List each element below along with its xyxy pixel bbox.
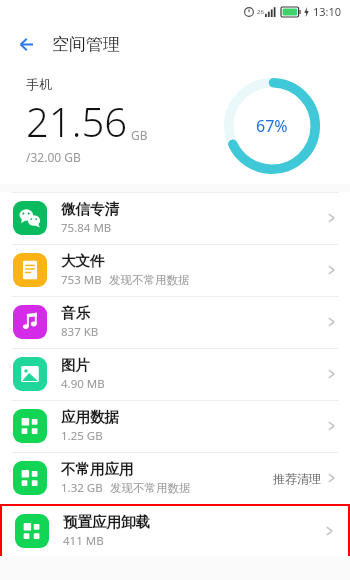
staticText: 21.56 [26,94,128,148]
staticText: 75.84 MB [61,220,112,236]
staticText: 发现不常用数据 [109,273,190,287]
staticText: 微信专清 [61,200,119,218]
staticText: 4.90 MB [61,376,105,392]
staticText: 推荐清理 [273,471,321,486]
staticText: 13:10 [313,4,342,19]
staticText: 837 KB [61,324,99,340]
staticText: /32.00 GB [26,149,81,165]
button[interactable]: 图片 [0,348,350,400]
button[interactable]: 微信专清 [0,192,350,244]
staticText: 空间管理 [52,34,120,55]
staticText: 26 [257,8,264,16]
staticText: 应用数据 [61,408,119,426]
button[interactable]: 应用数据 [0,400,350,452]
staticText: 1.25 GB [61,428,103,444]
button[interactable]: 预置应用卸载 [2,506,348,556]
staticText: 1.32 GB [61,480,103,496]
button[interactable]: Back [8,28,40,60]
staticText: 预置应用卸载 [63,513,150,531]
staticText: 不常用应用 [61,460,134,478]
staticText: 大文件 [61,252,105,270]
button[interactable]: 音乐 [0,296,350,348]
staticText: GB [131,127,148,143]
button[interactable]: 大文件 [0,244,350,296]
staticText: 图片 [61,356,90,374]
button[interactable]: 不常用应用 [0,452,350,504]
staticText: 753 MB [61,272,102,288]
staticText: 音乐 [61,304,90,322]
staticText: 发现不常用数据 [110,481,191,495]
staticText: 手机 [26,76,52,92]
staticText: 67% [256,115,288,137]
staticText: 411 MB [63,533,104,549]
